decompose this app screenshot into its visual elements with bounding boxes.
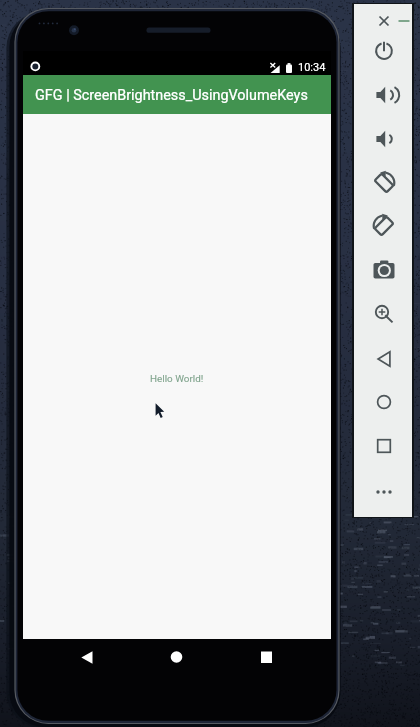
staticText: GFG | ScreenBrightness_UsingVolumeKeys — [35, 87, 308, 104]
button[interactable]: Screenshot — [369, 255, 399, 285]
button[interactable]: Power — [369, 36, 399, 66]
button[interactable]: GFG | ScreenBrightness_UsingVolumeKeys — [23, 75, 331, 114]
button[interactable]: Close — [375, 12, 393, 30]
button[interactable]: More — [369, 477, 399, 507]
button[interactable]: Minimize — [395, 12, 413, 30]
button[interactable]: Overview — [369, 431, 399, 461]
staticText: Hello World! — [150, 373, 204, 385]
button[interactable]: Rotate left — [369, 168, 399, 198]
button[interactable]: Volume down — [369, 124, 399, 154]
button[interactable]: Volume up — [369, 80, 399, 110]
button[interactable]: Zoom — [369, 299, 399, 329]
staticText: 10:34 — [298, 61, 326, 74]
button[interactable]: Home — [369, 387, 399, 417]
button[interactable]: Back — [369, 344, 399, 374]
button[interactable]: Rotate right — [369, 211, 399, 241]
